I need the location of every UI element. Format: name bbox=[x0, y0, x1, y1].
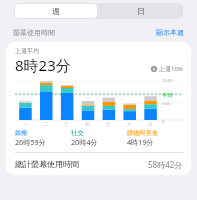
button[interactable]: 社交 bbox=[71, 129, 127, 147]
staticText: 12:00 bbox=[162, 78, 173, 84]
staticText: 六 bbox=[127, 121, 132, 127]
staticText: 58時42分 bbox=[148, 159, 183, 170]
staticText: 26時59分 bbox=[15, 137, 46, 147]
staticText: 8時23分 bbox=[15, 55, 71, 75]
button[interactable]: 顯示本週 bbox=[156, 28, 184, 37]
staticText: 購物與美食 bbox=[127, 129, 158, 137]
other: Decrease from last week bbox=[151, 66, 157, 72]
staticText: 螢幕使用時間 bbox=[13, 28, 55, 37]
button[interactable]: 娛樂 bbox=[15, 129, 71, 147]
button[interactable]: 日 bbox=[98, 3, 183, 19]
staticText: 20時4分 bbox=[71, 137, 98, 147]
staticText: 上週10% bbox=[159, 65, 183, 73]
button[interactable]: 上週平均 bbox=[6, 42, 191, 175]
staticText: 四 bbox=[85, 121, 90, 127]
staticText: 顯示本週 bbox=[156, 28, 184, 37]
staticText: 日 bbox=[137, 6, 145, 16]
staticText: 三 bbox=[64, 121, 69, 127]
staticText: 平均 bbox=[162, 92, 173, 99]
button[interactable]: 週 bbox=[15, 4, 97, 18]
staticText: 4時19分 bbox=[127, 137, 154, 147]
staticText: 6:00 bbox=[162, 101, 171, 107]
staticText: 一 bbox=[23, 121, 28, 127]
staticText: 總計螢幕使用時間 bbox=[15, 159, 79, 169]
staticText: 日 bbox=[148, 121, 153, 127]
staticText: 五 bbox=[106, 121, 111, 127]
staticText: 二 bbox=[43, 121, 48, 127]
staticText: 週 bbox=[52, 6, 60, 16]
staticText: 社交 bbox=[71, 129, 84, 137]
staticText: 娛樂 bbox=[15, 129, 28, 137]
staticText: 0 bbox=[162, 119, 165, 125]
staticText: 上週平均 bbox=[15, 47, 39, 55]
button[interactable]: 購物與美食 bbox=[127, 129, 183, 147]
